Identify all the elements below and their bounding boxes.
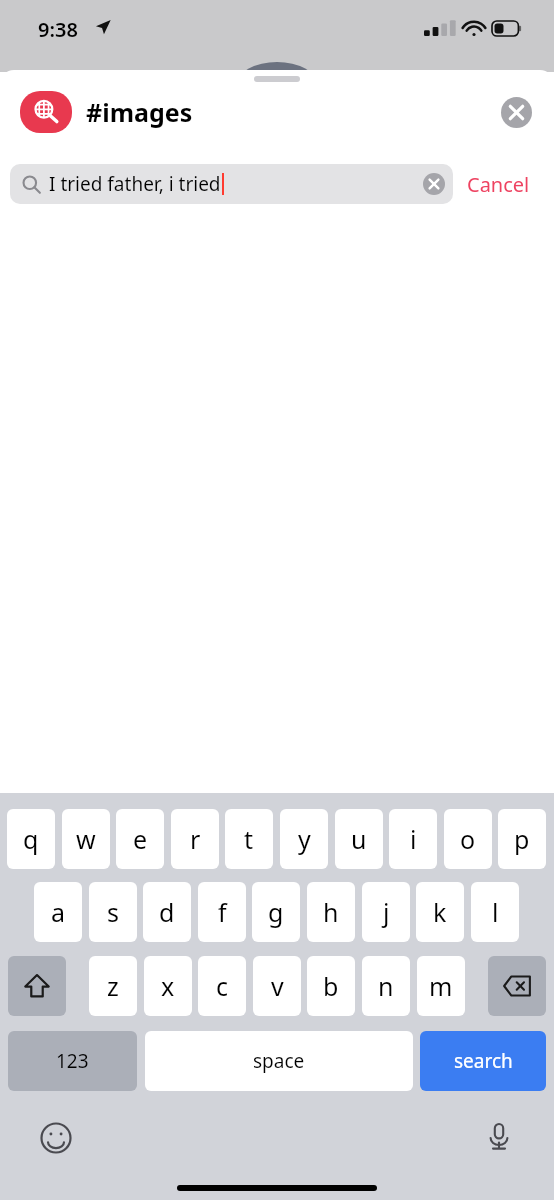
staticText: i: [410, 822, 417, 856]
button[interactable]: j: [362, 882, 410, 942]
staticText: z: [107, 969, 119, 1003]
staticText: u: [351, 822, 367, 856]
button[interactable]: Clear text: [419, 169, 449, 199]
button[interactable]: k: [416, 882, 464, 942]
staticText: f: [218, 895, 227, 929]
staticText: I tried father, i tried: [49, 171, 221, 197]
button[interactable]: e: [116, 809, 164, 869]
button[interactable]: Close: [494, 90, 538, 134]
button[interactable]: r: [171, 809, 219, 869]
staticText: a: [51, 895, 66, 929]
button[interactable]: f: [198, 882, 246, 942]
button[interactable]: l: [471, 882, 519, 942]
staticText: m: [429, 969, 453, 1003]
button[interactable]: u: [335, 809, 383, 869]
button[interactable]: n: [362, 956, 410, 1016]
staticText: b: [323, 969, 339, 1003]
button[interactable]: i: [389, 809, 437, 869]
button[interactable]: s: [89, 882, 137, 942]
staticText: o: [460, 822, 476, 856]
staticText: e: [133, 822, 148, 856]
staticText: space: [253, 1048, 305, 1074]
staticText: s: [107, 895, 119, 929]
button[interactable]: v: [253, 956, 301, 1016]
staticText: y: [298, 822, 311, 856]
staticText: 123: [56, 1048, 89, 1074]
button[interactable]: space: [145, 1031, 413, 1091]
staticText: 9:38: [38, 16, 78, 43]
staticText: g: [268, 895, 284, 929]
button[interactable]: 123: [8, 1031, 137, 1091]
staticText: q: [23, 822, 39, 856]
button[interactable]: Cancel: [453, 164, 538, 204]
staticText: d: [159, 895, 175, 929]
button[interactable]: z: [89, 956, 137, 1016]
button[interactable]: b: [307, 956, 355, 1016]
staticText: #images: [86, 95, 193, 129]
staticText: p: [514, 822, 530, 856]
staticText: Cancel: [467, 171, 530, 198]
button[interactable]: w: [62, 809, 110, 869]
staticText: search: [454, 1048, 513, 1074]
button[interactable]: search: [420, 1031, 546, 1091]
button[interactable]: [20, 91, 72, 133]
button[interactable]: g: [252, 882, 300, 942]
button[interactable]: o: [444, 809, 492, 869]
button[interactable]: d: [143, 882, 191, 942]
button[interactable]: I tried father, i tried: [10, 164, 453, 204]
button[interactable]: Dictation: [479, 1116, 519, 1156]
button[interactable]: Shift: [8, 956, 66, 1016]
button[interactable]: h: [307, 882, 355, 942]
staticText: k: [433, 895, 447, 929]
button[interactable]: q: [7, 809, 55, 869]
button[interactable]: c: [198, 956, 246, 1016]
button[interactable]: t: [225, 809, 273, 869]
staticText: x: [161, 969, 175, 1003]
staticText: r: [190, 822, 201, 856]
staticText: h: [323, 895, 339, 929]
button[interactable]: Emoji: [36, 1118, 76, 1158]
staticText: w: [76, 822, 96, 856]
button[interactable]: Backspace: [488, 956, 546, 1016]
button[interactable]: m: [417, 956, 465, 1016]
button[interactable]: y: [280, 809, 328, 869]
staticText: n: [378, 969, 394, 1003]
button[interactable]: p: [498, 809, 546, 869]
button[interactable]: a: [34, 882, 82, 942]
staticText: v: [271, 969, 284, 1003]
staticText: c: [216, 969, 229, 1003]
staticText: t: [244, 822, 254, 856]
button[interactable]: x: [144, 956, 192, 1016]
staticText: j: [383, 895, 390, 929]
staticText: l: [492, 895, 499, 929]
